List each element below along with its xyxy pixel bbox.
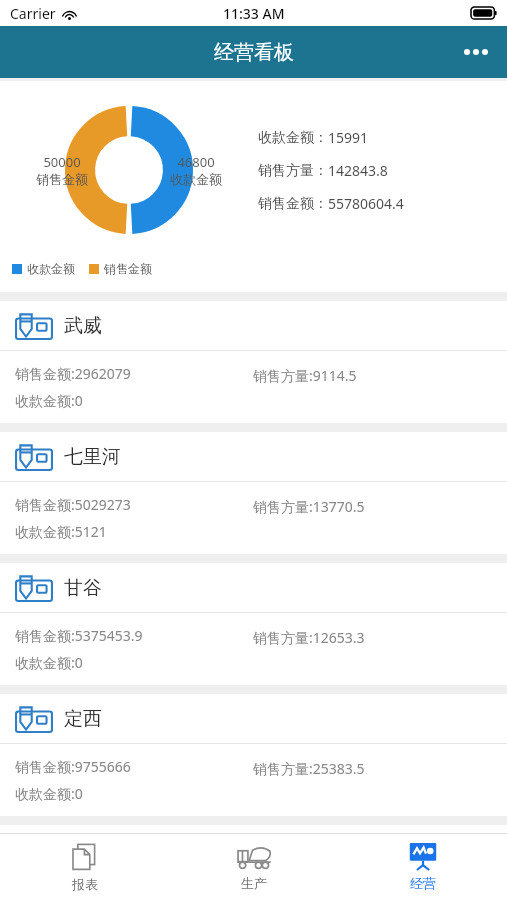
- staticText: 经营: [410, 875, 436, 891]
- staticText: 收款金额:5121: [15, 522, 107, 541]
- button[interactable]: 经营: [338, 834, 507, 900]
- staticText: 经营看板: [214, 40, 294, 65]
- staticText: 甘谷: [64, 576, 102, 600]
- staticText: 销售金额:9755666: [15, 757, 131, 776]
- staticText: 销售金额：: [258, 195, 328, 213]
- staticText: 销售方量:12653.3: [253, 628, 365, 647]
- staticText: 46800: [177, 153, 215, 171]
- button[interactable]: 生产: [169, 834, 338, 900]
- button[interactable]: 报表: [0, 834, 169, 900]
- staticText: 收款金额: [27, 261, 75, 276]
- staticText: 收款金额:0: [15, 784, 83, 803]
- staticText: 销售金额:5029273: [15, 495, 131, 514]
- staticText: Carrier: [10, 4, 56, 23]
- staticText: 销售金额:2962079: [15, 364, 131, 383]
- staticText: 定西: [64, 707, 102, 731]
- staticText: 销售方量:25383.5: [253, 759, 365, 778]
- button[interactable]: 定西: [0, 694, 507, 816]
- staticText: 142843.8: [328, 161, 388, 180]
- staticText: 50000: [43, 153, 81, 171]
- button[interactable]: 甘谷: [0, 563, 507, 685]
- staticText: 收款金额: [170, 171, 222, 187]
- staticText: 收款金额：: [258, 129, 328, 147]
- button[interactable]: 七里河: [0, 432, 507, 554]
- staticText: 11:33 AM: [223, 4, 285, 23]
- button[interactable]: 武威: [0, 301, 507, 423]
- staticText: 销售金额:5375453.9: [15, 626, 143, 645]
- staticText: 武威: [64, 314, 102, 338]
- staticText: 15991: [328, 128, 369, 147]
- button[interactable]: More options: [453, 30, 499, 74]
- staticText: 55780604.4: [328, 194, 404, 213]
- staticText: 七里河: [64, 445, 121, 469]
- staticText: 销售方量：: [258, 162, 328, 180]
- staticText: 收款金额:0: [15, 391, 83, 410]
- staticText: 销售金额: [104, 261, 152, 276]
- staticText: 销售方量:9114.5: [253, 366, 357, 385]
- staticText: 生产: [241, 875, 267, 891]
- staticText: 报表: [72, 876, 98, 892]
- staticText: 收款金额:0: [15, 653, 83, 672]
- staticText: 销售金额: [36, 171, 88, 187]
- staticText: 销售方量:13770.5: [253, 497, 365, 516]
